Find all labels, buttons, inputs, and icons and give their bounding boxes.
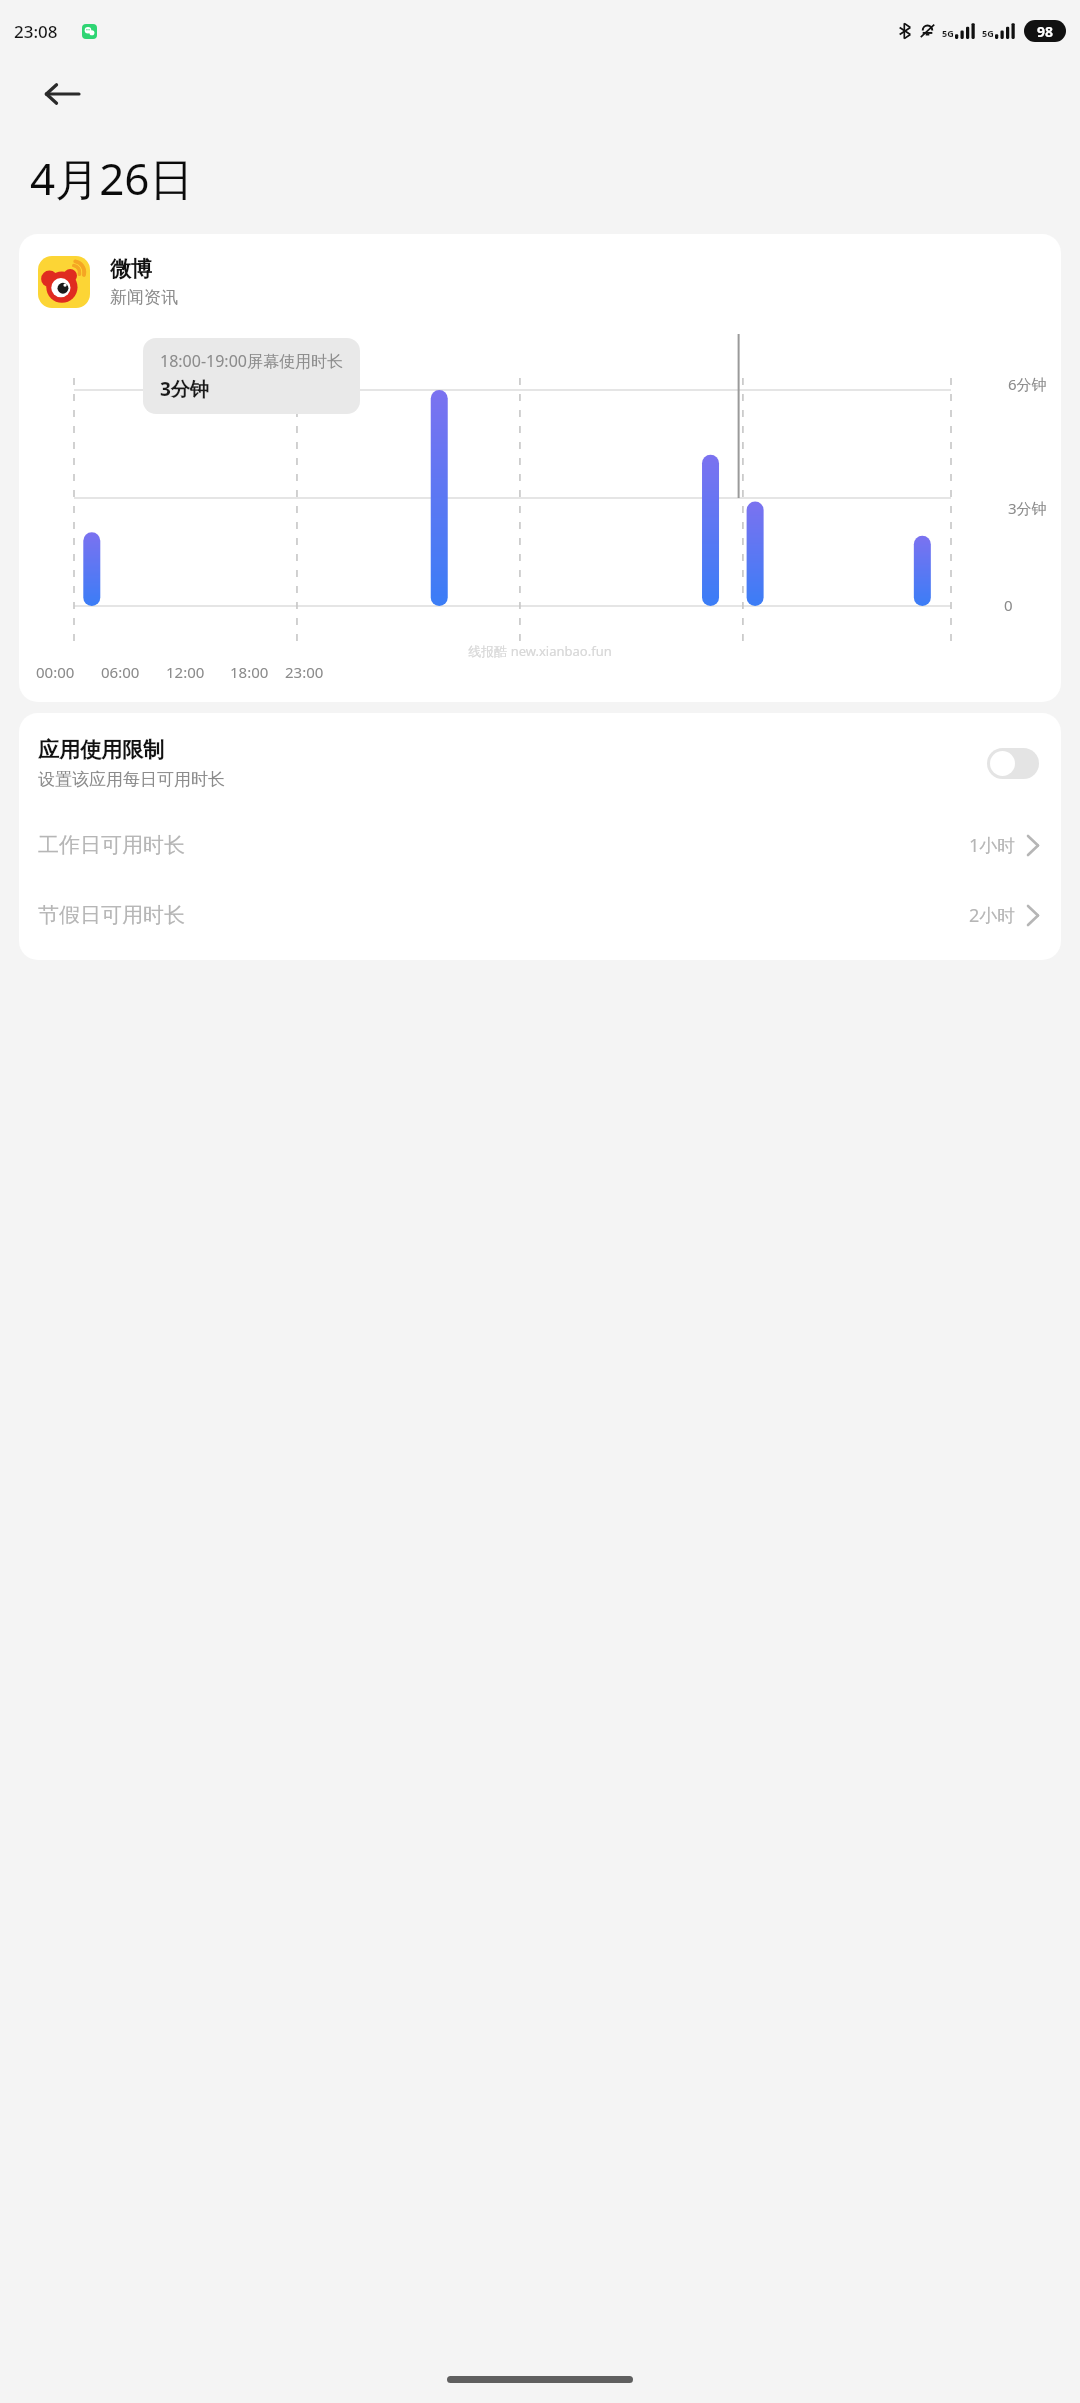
staticText: 线报酷 new.xianbao.fun — [468, 642, 612, 660]
button[interactable]: 应用使用限制 — [19, 713, 1061, 810]
button[interactable]: 返回 — [30, 62, 94, 126]
staticText: 4月26日 — [30, 148, 194, 208]
staticText: 98 — [1037, 22, 1054, 41]
staticText: 节假日可用时长 — [38, 902, 969, 928]
button[interactable]: 微博 — [19, 234, 1061, 702]
staticText: 5G — [942, 27, 954, 39]
staticText: 12:00 — [166, 662, 205, 682]
button[interactable]: 节假日可用时长 — [19, 880, 1061, 950]
staticText: 5G — [982, 27, 994, 39]
staticText: 3分钟 — [1008, 498, 1047, 518]
staticText: 00:00 — [36, 662, 75, 682]
staticText: 新闻资讯 — [110, 287, 178, 308]
staticText: 18:00 — [230, 662, 269, 682]
staticText: 2小时 — [969, 903, 1016, 928]
staticText: 微博 — [110, 256, 152, 282]
button[interactable]: 工作日可用时长 — [19, 810, 1061, 880]
staticText: 23:08 — [14, 20, 58, 43]
staticText: 3分钟 — [160, 376, 209, 402]
button[interactable] — [987, 748, 1039, 779]
staticText: 工作日可用时长 — [38, 832, 969, 858]
staticText: 应用使用限制 — [38, 737, 164, 763]
staticText: 0 — [1004, 595, 1013, 615]
staticText: 设置该应用每日可用时长 — [38, 769, 225, 790]
staticText: 6分钟 — [1008, 374, 1047, 394]
staticText: 06:00 — [101, 662, 140, 682]
staticText: 18:00-19:00屏幕使用时长 — [160, 350, 343, 372]
staticText: 23:00 — [285, 662, 324, 682]
staticText: 1小时 — [969, 833, 1016, 858]
